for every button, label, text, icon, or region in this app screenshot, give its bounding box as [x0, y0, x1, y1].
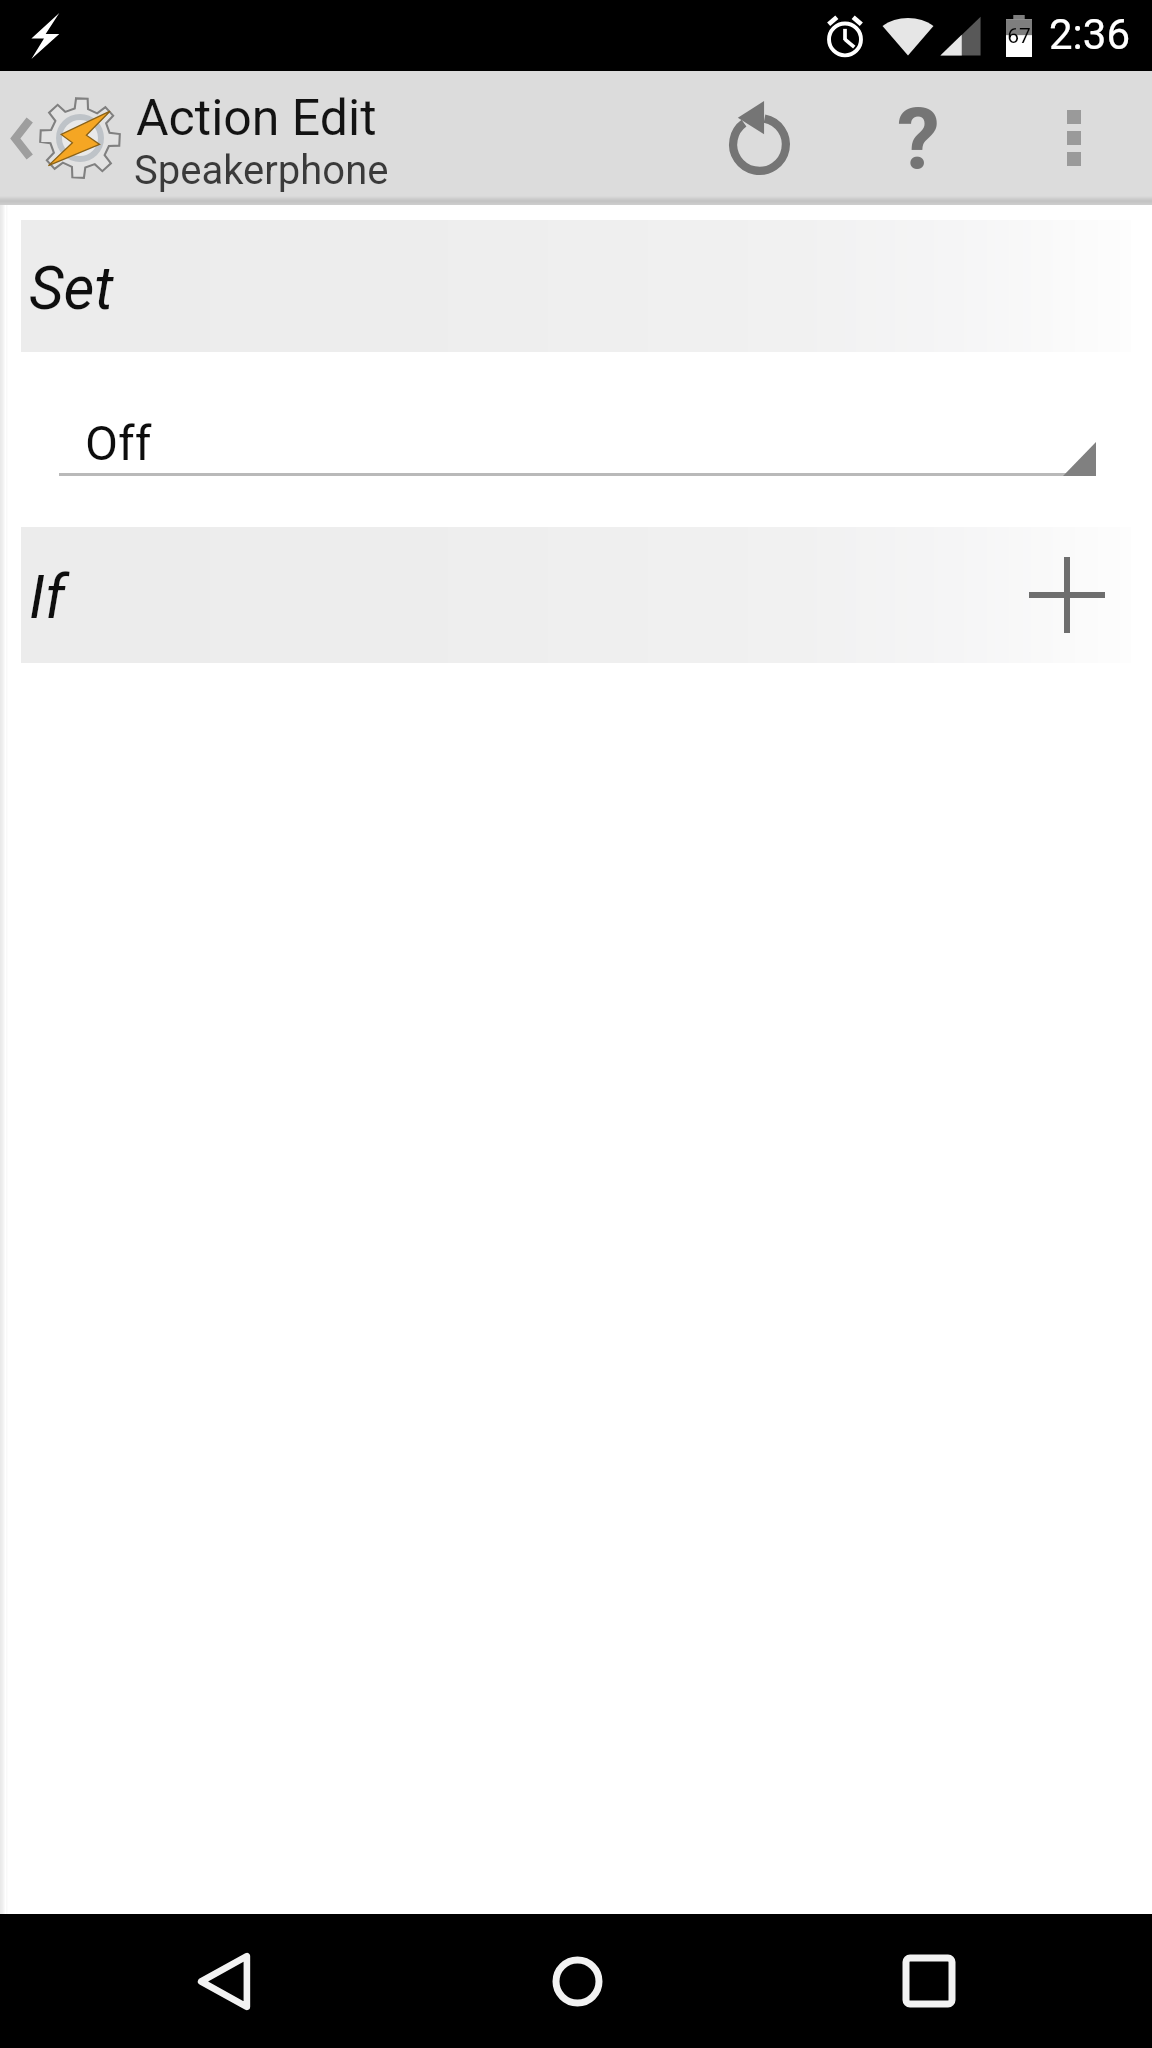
- button[interactable]: More options: [995, 71, 1152, 205]
- staticText: Speakerphone: [134, 147, 389, 194]
- button[interactable]: Off: [59, 407, 1096, 483]
- staticText: Set: [29, 253, 114, 323]
- button[interactable]: Reset: [681, 71, 838, 205]
- staticText: Action Edit: [136, 89, 377, 148]
- button[interactable]: Set: [21, 220, 1131, 352]
- staticText: If: [29, 562, 66, 632]
- button[interactable]: Help: [838, 71, 995, 205]
- staticText: Off: [85, 415, 152, 471]
- button[interactable]: If: [21, 527, 1131, 663]
- staticText: 2:36: [1049, 10, 1130, 59]
- button[interactable]: Back: [0, 1914, 448, 2048]
- button[interactable]: Navigate up: [0, 71, 681, 205]
- button[interactable]: Home: [448, 1914, 706, 2048]
- staticText: 67: [1007, 24, 1031, 49]
- staticText: ?: [897, 89, 940, 190]
- button[interactable]: Recent apps: [706, 1914, 1152, 2048]
